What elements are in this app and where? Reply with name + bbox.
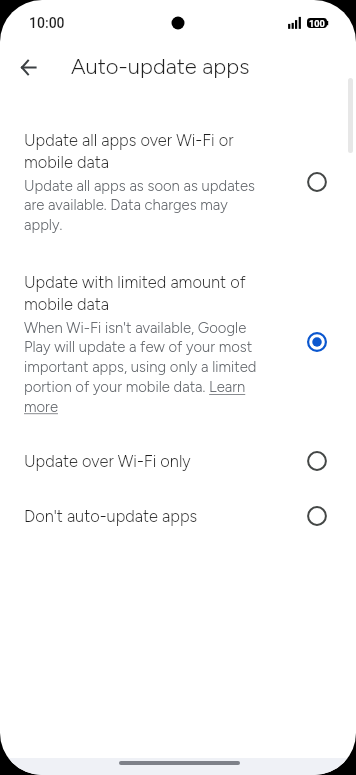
staticText: When Wi-Fi isn't available, Google Play … [24, 319, 262, 416]
button[interactable]: Don't auto-update apps [0, 488, 356, 543]
staticText: Auto-update apps [71, 53, 250, 79]
staticText: 10:00 [29, 15, 65, 31]
staticText: 100 [309, 18, 325, 28]
button[interactable]: Navigate up [12, 51, 44, 83]
button[interactable]: Update over Wi-Fi only [0, 433, 356, 488]
staticText: Update all apps as soon as updates are a… [24, 177, 262, 234]
staticText: Update with limited amount of mobile dat… [24, 272, 262, 314]
button[interactable]: Update all apps over Wi-Fi or mobile dat… [0, 112, 356, 232]
button[interactable]: Update with limited amount of mobile dat… [0, 254, 356, 412]
staticText: Don't auto-update apps [24, 506, 198, 526]
staticText: Update all apps over Wi-Fi or mobile dat… [24, 130, 262, 172]
staticText: Update over Wi-Fi only [24, 451, 191, 471]
